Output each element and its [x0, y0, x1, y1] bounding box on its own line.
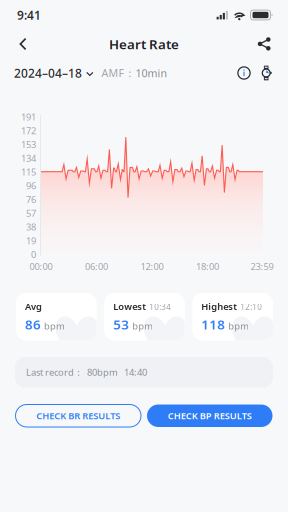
staticText: 12:10 — [240, 301, 262, 312]
button[interactable]: Back — [9, 31, 37, 57]
button[interactable]: 2024–04–18 — [14, 60, 94, 86]
staticText: 23:59 — [250, 260, 273, 273]
staticText: 57 — [26, 207, 36, 219]
staticText: 96 — [26, 180, 36, 192]
staticText: CHECK BR RESULTS — [36, 410, 120, 422]
staticText: 00:00 — [29, 260, 52, 273]
button[interactable]: Lowest — [104, 293, 185, 340]
staticText: 115 — [21, 166, 36, 178]
staticText: 76 — [26, 193, 36, 206]
staticText: 86 — [25, 316, 41, 333]
staticText: 38 — [26, 221, 36, 233]
staticText: 06:00 — [85, 260, 108, 273]
staticText: 18:00 — [196, 260, 219, 273]
staticText: 172 — [21, 125, 36, 137]
staticText: 2024–04–18 — [14, 65, 82, 81]
staticText: 9:41 — [17, 7, 41, 23]
button[interactable]: Information — [237, 66, 251, 80]
staticText: 12:00 — [140, 260, 163, 273]
staticText: 19 — [26, 235, 36, 247]
staticText: 191 — [21, 111, 36, 123]
staticText: 0 — [31, 248, 36, 261]
staticText: bpm — [132, 320, 153, 332]
staticText: 10min — [136, 66, 168, 80]
button[interactable]: Avg — [16, 293, 97, 340]
button[interactable]: Share — [250, 31, 278, 57]
staticText: CHECK BP RESULTS — [168, 410, 252, 422]
staticText: bpm — [228, 320, 249, 332]
staticText: 10:34 — [149, 301, 171, 312]
staticText: 118 — [201, 316, 225, 333]
button[interactable]: CHECK BP RESULTS — [147, 404, 272, 427]
staticText: 153 — [21, 138, 36, 151]
staticText: Last record： 80bpm 14:40 — [26, 366, 147, 378]
staticText: Lowest — [113, 300, 146, 313]
staticText: 134 — [21, 152, 36, 164]
button[interactable]: CHECK BR RESULTS — [15, 404, 141, 427]
staticText: 53 — [113, 316, 129, 333]
staticText: Highest — [201, 300, 237, 313]
button[interactable]: Paired watch — [251, 65, 272, 80]
staticText: Avg — [25, 300, 42, 313]
staticText: bpm — [44, 320, 65, 332]
button[interactable]: Highest — [192, 293, 273, 340]
staticText: Heart Rate — [109, 35, 179, 53]
staticText: AMF： — [102, 66, 136, 80]
